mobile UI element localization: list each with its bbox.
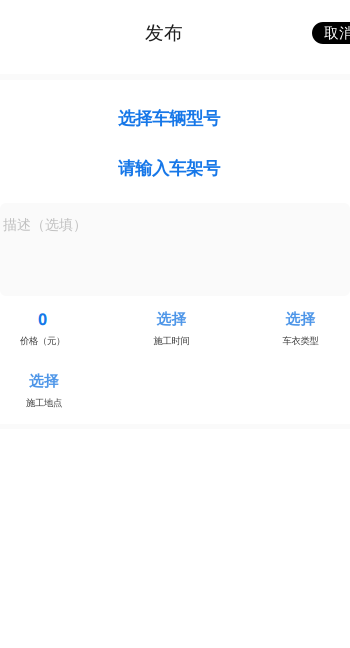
staticText: 选择: [156, 310, 186, 328]
staticText: 施工地点: [26, 397, 62, 409]
staticText: 描述（选填）: [3, 216, 87, 234]
button[interactable]: 请输入车架号: [0, 143, 338, 193]
staticText: 价格（元）: [20, 335, 65, 347]
button[interactable]: 选择: [107, 294, 236, 356]
staticText: 选择: [285, 310, 315, 328]
staticText: 0: [38, 308, 47, 330]
button[interactable]: 选择: [236, 294, 350, 356]
button[interactable]: 选择车辆型号: [0, 93, 338, 143]
staticText: 取消: [324, 24, 350, 42]
staticText: 车衣类型: [282, 335, 318, 347]
staticText: 施工时间: [153, 335, 189, 347]
staticText: 发布: [145, 21, 183, 45]
button[interactable]: 取消: [312, 22, 350, 44]
staticText: 选择: [29, 372, 59, 390]
button[interactable]: 描述（选填）: [0, 203, 350, 296]
button[interactable]: 0: [0, 294, 107, 356]
staticText: 请输入车架号: [118, 158, 220, 179]
button[interactable]: 选择: [0, 356, 108, 418]
staticText: 选择车辆型号: [118, 108, 220, 129]
